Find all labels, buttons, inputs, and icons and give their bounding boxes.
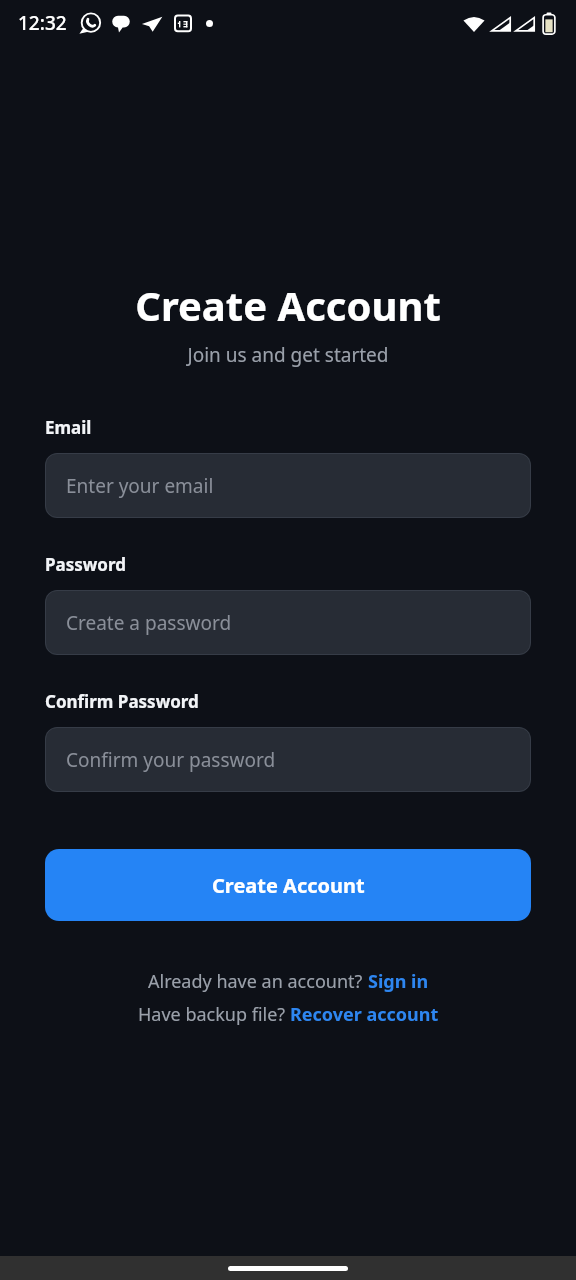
button[interactable]: Create a password — [45, 590, 531, 655]
staticText: Email — [45, 416, 92, 439]
staticText: Confirm your password — [66, 747, 276, 773]
staticText: 12:32 — [18, 10, 67, 36]
staticText: Sign in — [368, 969, 429, 994]
other: Mobile signal — [491, 14, 511, 34]
staticText: Have backup file? — [138, 1002, 290, 1027]
staticText: Password — [45, 553, 126, 576]
other: WhatsApp — [80, 13, 101, 34]
other: Battery — [542, 12, 556, 35]
button[interactable]: Create Account — [45, 849, 531, 921]
button[interactable]: Recover account — [290, 1002, 439, 1027]
other: Calendar — [173, 13, 193, 33]
other: Home gesture — [228, 1266, 348, 1271]
button[interactable]: Enter your email — [45, 453, 531, 518]
staticText: Confirm Password — [45, 690, 199, 713]
other: Messages — [111, 13, 131, 33]
staticText: Already have an account? — [148, 969, 368, 994]
staticText: Recover account — [290, 1002, 439, 1027]
other: Mobile signal — [515, 14, 535, 34]
staticText: Join us and get started — [0, 342, 576, 368]
staticText: Create a password — [66, 610, 232, 636]
staticText: Enter your email — [66, 473, 214, 499]
other: Wi-Fi — [463, 13, 485, 35]
button[interactable]: Sign in — [368, 969, 429, 994]
staticText: Create Account — [0, 278, 576, 332]
button[interactable]: Confirm your password — [45, 727, 531, 792]
staticText: Create Account — [212, 872, 365, 899]
other: Telegram — [141, 12, 163, 34]
